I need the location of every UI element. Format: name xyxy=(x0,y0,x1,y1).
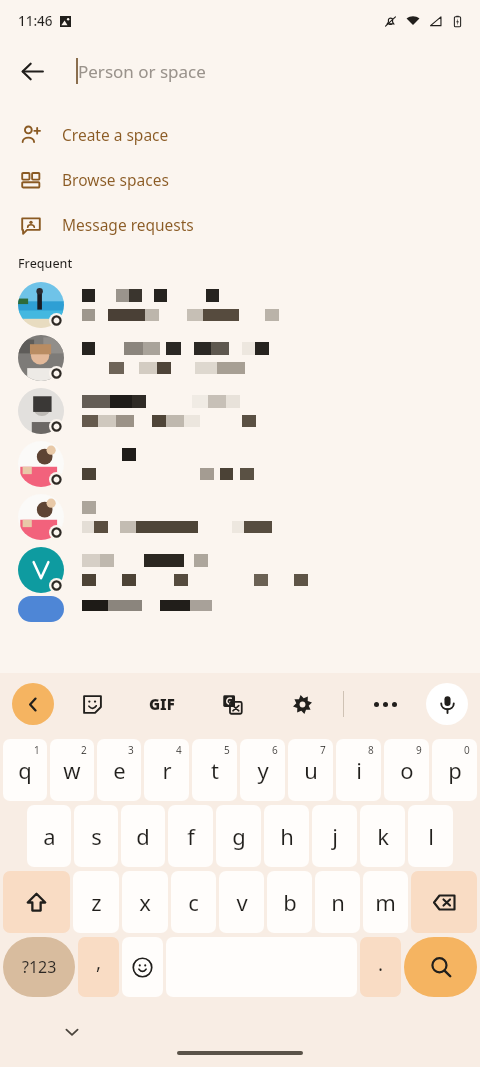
button[interactable] xyxy=(0,384,480,437)
button[interactable]: i xyxy=(336,739,381,801)
staticText: 7 xyxy=(320,743,326,757)
staticText: 11:46 xyxy=(18,12,53,30)
staticText: Create a space xyxy=(62,124,169,145)
staticText: 6 xyxy=(272,743,278,757)
staticText: , xyxy=(96,949,102,975)
button[interactable]: Translate xyxy=(210,682,254,726)
button[interactable]: x xyxy=(122,871,168,933)
button[interactable]: r xyxy=(144,739,189,801)
button[interactable]: Backspace xyxy=(411,871,477,933)
staticText: 0 xyxy=(464,743,470,757)
staticText: e xyxy=(113,755,126,785)
staticText: i xyxy=(356,755,362,785)
button[interactable] xyxy=(0,596,480,622)
button[interactable]: Search xyxy=(404,937,477,997)
button[interactable] xyxy=(0,490,480,543)
button[interactable]: z xyxy=(73,871,119,933)
staticText: 5 xyxy=(224,743,230,757)
button[interactable]: m xyxy=(363,871,408,933)
button[interactable]: j xyxy=(312,805,357,867)
button[interactable]: a xyxy=(27,805,71,867)
button[interactable]: Browse spaces xyxy=(0,157,480,202)
button[interactable]: Back xyxy=(8,47,56,95)
button[interactable] xyxy=(0,331,480,384)
staticText: h xyxy=(280,821,294,851)
button[interactable]: Hide keyboard xyxy=(52,1012,92,1052)
staticText: n xyxy=(331,887,345,917)
button[interactable]: Period xyxy=(360,937,401,997)
button[interactable]: d xyxy=(121,805,165,867)
button[interactable] xyxy=(0,437,480,490)
staticText: 4 xyxy=(176,743,182,757)
button[interactable]: g xyxy=(216,805,261,867)
staticText: 9 xyxy=(416,743,422,757)
button[interactable]: Comma xyxy=(78,937,119,997)
staticText: z xyxy=(91,887,102,917)
staticText: s xyxy=(91,821,102,851)
button[interactable]: l xyxy=(408,805,453,867)
button[interactable]: q xyxy=(3,739,47,801)
staticText: b xyxy=(283,887,297,917)
button[interactable]: ?123 xyxy=(3,937,75,997)
button[interactable]: y xyxy=(240,739,285,801)
staticText: 1 xyxy=(34,743,40,757)
button[interactable]: Emoji xyxy=(122,937,163,997)
button[interactable]: Create a space xyxy=(0,112,480,157)
staticText: f xyxy=(187,821,195,851)
button[interactable]: f xyxy=(168,805,213,867)
staticText: Frequent xyxy=(18,255,73,272)
button[interactable]: u xyxy=(288,739,333,801)
staticText: GIF xyxy=(149,694,175,714)
button[interactable]: h xyxy=(264,805,309,867)
staticText: Person or space xyxy=(78,60,206,83)
button[interactable]: Person or space xyxy=(76,42,480,100)
button[interactable]: o xyxy=(384,739,429,801)
staticText: x xyxy=(139,887,151,917)
staticText: 3 xyxy=(128,743,134,757)
staticText: l xyxy=(428,821,434,851)
button[interactable]: t xyxy=(192,739,237,801)
button[interactable]: GIF xyxy=(140,682,184,726)
button[interactable]: k xyxy=(360,805,405,867)
button[interactable]: More options xyxy=(363,682,407,726)
staticText: w xyxy=(63,755,81,785)
staticText: u xyxy=(304,755,318,785)
button[interactable]: s xyxy=(74,805,118,867)
button[interactable]: Settings xyxy=(280,682,324,726)
staticText: g xyxy=(232,821,246,851)
staticText: Message requests xyxy=(62,214,194,235)
staticText: ?123 xyxy=(22,956,57,978)
staticText: p xyxy=(448,755,462,785)
button[interactable]: Stickers xyxy=(70,682,114,726)
button[interactable]: Voice input xyxy=(426,683,468,725)
staticText: r xyxy=(162,755,172,785)
staticText: k xyxy=(377,821,389,851)
staticText: o xyxy=(400,755,414,785)
button[interactable]: c xyxy=(171,871,216,933)
button[interactable]: n xyxy=(315,871,360,933)
staticText: q xyxy=(18,755,32,785)
staticText: m xyxy=(375,887,396,917)
staticText: d xyxy=(136,821,150,851)
staticText: c xyxy=(188,887,199,917)
staticText: t xyxy=(211,755,219,785)
button[interactable] xyxy=(0,278,480,331)
staticText: v xyxy=(236,887,248,917)
staticText: . xyxy=(378,951,384,977)
button[interactable]: Message requests xyxy=(0,202,480,247)
button[interactable]: e xyxy=(97,739,141,801)
staticText: Browse spaces xyxy=(62,169,169,190)
button[interactable]: b xyxy=(267,871,312,933)
staticText: a xyxy=(43,821,56,851)
staticText: y xyxy=(257,755,269,785)
staticText: j xyxy=(332,821,338,851)
button[interactable] xyxy=(0,543,480,596)
button[interactable]: w xyxy=(50,739,94,801)
button[interactable]: Back xyxy=(12,683,54,725)
staticText: 8 xyxy=(368,743,374,757)
staticText: 2 xyxy=(81,743,87,757)
button[interactable]: v xyxy=(219,871,264,933)
button[interactable]: Shift xyxy=(3,871,70,933)
button[interactable]: p xyxy=(432,739,477,801)
